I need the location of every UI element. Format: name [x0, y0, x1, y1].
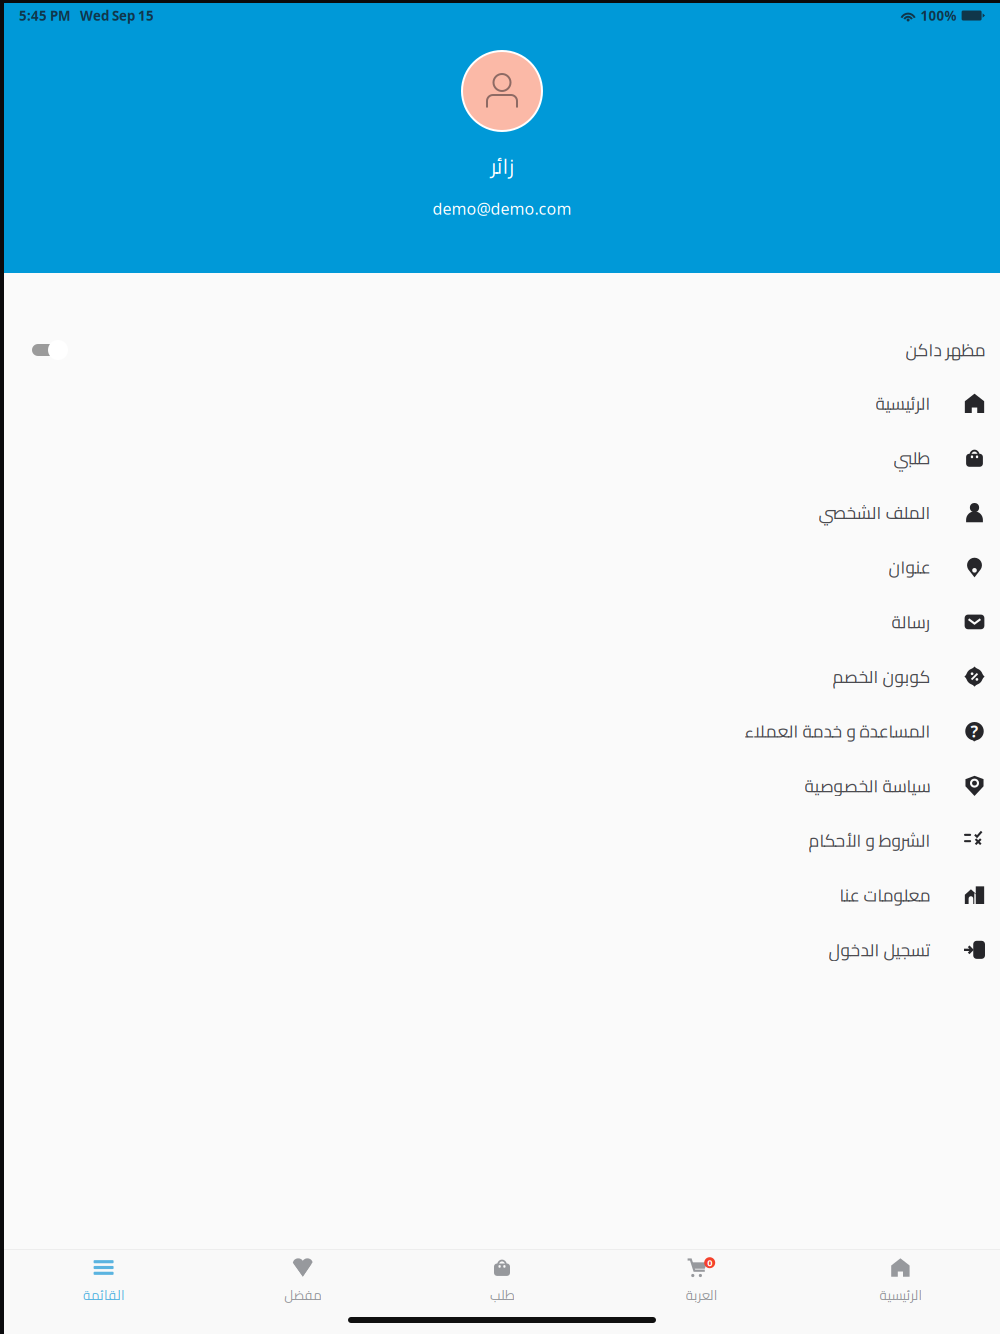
staticText: الملف الشخصي — [818, 496, 930, 529]
staticText: الشروط و الأحكام — [808, 824, 930, 857]
button[interactable]: الشروط و الأحكام — [4, 813, 1000, 868]
staticText: 100% — [921, 7, 957, 24]
staticText: طلبي — [893, 442, 930, 474]
staticText: 0 — [707, 1256, 712, 1269]
staticText: القائمة — [83, 1282, 125, 1307]
staticText: الرئيسية — [879, 1282, 922, 1307]
staticText: رسالة — [891, 606, 930, 638]
staticText: معلومات عنا — [839, 879, 930, 911]
button[interactable]: الملف الشخصي — [4, 485, 1000, 540]
button[interactable]: المساعدة و خدمة العملاء — [4, 704, 1000, 758]
staticText: عنوان — [888, 551, 930, 583]
button[interactable]: 0 — [602, 1250, 801, 1306]
button[interactable]: طلبي — [4, 431, 1000, 485]
staticText: سياسة الخصوصية — [804, 770, 930, 802]
staticText: طلب — [489, 1282, 514, 1307]
staticText: Wed Sep 15 — [80, 7, 154, 24]
button[interactable]: كوبون الخصم — [4, 649, 1000, 704]
staticText: الرئيسية — [875, 387, 930, 420]
button[interactable]: مفضل — [203, 1250, 402, 1306]
staticText: مظهر داكن — [905, 334, 985, 366]
button[interactable]: رسالة — [4, 595, 1000, 649]
button[interactable]: الرئيسية — [801, 1250, 1000, 1306]
staticText: كوبون الخصم — [832, 660, 930, 693]
staticText: ? — [970, 721, 978, 742]
staticText: زائر — [490, 146, 514, 186]
staticText: المساعدة و خدمة العملاء — [744, 715, 930, 747]
staticText: العربة — [685, 1282, 717, 1307]
staticText: مفضل — [284, 1282, 322, 1307]
staticText: تسجيل الدخول — [828, 934, 930, 966]
staticText: demo@demo.com — [432, 198, 571, 219]
button[interactable]: عنوان — [4, 540, 1000, 595]
button[interactable]: طلب — [402, 1250, 602, 1306]
button[interactable]: القائمة — [4, 1250, 203, 1306]
button[interactable]: الرئيسية — [4, 376, 1000, 431]
button[interactable]: سياسة الخصوصية — [4, 758, 1000, 813]
staticText: 5:45 PM — [19, 7, 71, 24]
button[interactable]: مظهر داكن — [4, 328, 1000, 372]
button[interactable]: معلومات عنا — [4, 868, 1000, 922]
button[interactable]: تسجيل الدخول — [4, 922, 1000, 977]
